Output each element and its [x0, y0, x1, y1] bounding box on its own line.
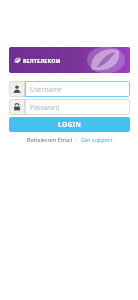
staticText: LOGIN	[58, 120, 82, 129]
staticText: Username	[30, 85, 62, 94]
button[interactable]: Password	[9, 99, 130, 115]
button[interactable]: Get support	[81, 136, 113, 144]
staticText: Get support	[81, 136, 113, 144]
staticText: Password	[30, 103, 60, 112]
staticText: ·	[73, 136, 81, 144]
button[interactable]: LOGIN	[9, 117, 130, 132]
staticText: БЕЛТЕЛЕКОМ	[23, 57, 61, 64]
button[interactable]: Username	[9, 81, 130, 97]
staticText: Beltelecom Email	[27, 136, 73, 144]
